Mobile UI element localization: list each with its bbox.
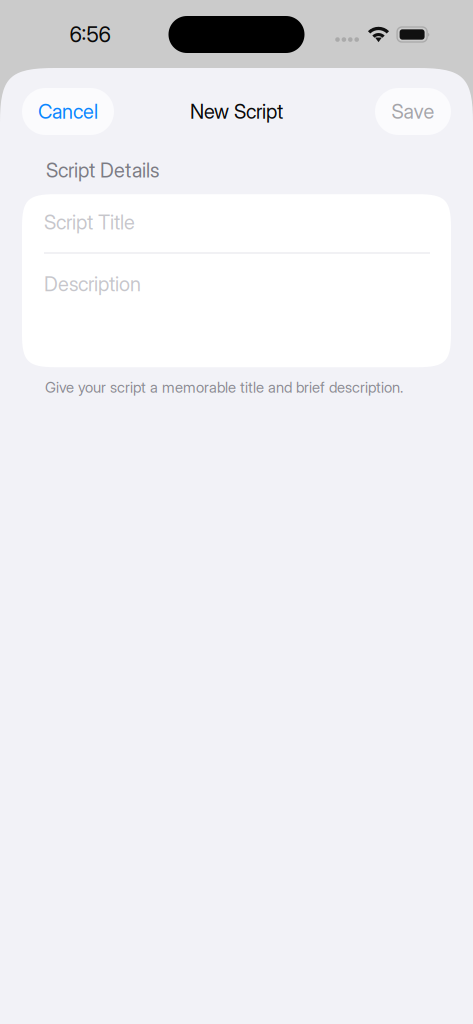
button[interactable]: Description [22,254,451,364]
staticText: Script Details [46,158,159,182]
button[interactable]: Script Title [22,194,451,252]
staticText: Save [391,99,434,124]
staticText: Cancel [38,99,98,124]
staticText: 6:56 [69,22,110,47]
staticText: Description [44,272,141,296]
button[interactable]: Save [375,88,451,135]
staticText: New Script [190,99,283,124]
button[interactable]: Cancel [22,88,114,135]
staticText: Give your script a memorable title and b… [45,378,403,396]
staticText: Script Title [44,210,135,234]
